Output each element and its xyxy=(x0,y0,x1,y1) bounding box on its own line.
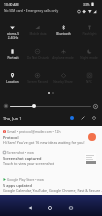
staticText: 5 apps updated xyxy=(3,183,32,188)
button[interactable]: Airplane mode xyxy=(50,44,76,68)
staticText: Mobile data xyxy=(29,32,47,36)
staticText: Nearby Share xyxy=(53,80,73,84)
button[interactable]: Bluetooth xyxy=(50,20,76,44)
button[interactable]: Screenshot • now xyxy=(0,147,102,168)
button[interactable]: Recent apps xyxy=(63,202,79,214)
button[interactable]: Google Play Store • now xyxy=(0,174,102,195)
staticText: Google Calendar, YouTube, Google Chrome,… xyxy=(3,188,102,193)
staticText: Screenshot captured xyxy=(3,156,42,161)
staticText: Protocol xyxy=(3,135,19,140)
button[interactable]: Night mode xyxy=(76,44,102,68)
button[interactable]: Nearby Share xyxy=(50,68,76,92)
button[interactable]: Gmail • protocol@mailer.com • 12h xyxy=(0,126,102,147)
staticText: Screen Record xyxy=(27,80,48,84)
staticText: Location xyxy=(6,80,19,84)
staticText: Screenshot • now xyxy=(7,150,34,154)
staticText: Thu, Jun 1 xyxy=(3,116,22,121)
staticText: NFC xyxy=(86,80,92,84)
button[interactable]: Portrait xyxy=(0,44,25,68)
button[interactable]: Location xyxy=(0,68,25,92)
button[interactable]: Back xyxy=(22,202,38,214)
other: Brightness xyxy=(4,104,8,108)
button[interactable]: Settings xyxy=(93,104,98,109)
button[interactable]: Home xyxy=(42,202,58,214)
staticText: Flashlight xyxy=(82,32,97,36)
staticText: Do Not Disturb xyxy=(27,56,49,60)
button[interactable]: atoms-5 2.4GHz xyxy=(0,20,25,44)
staticText: Bluetooth xyxy=(56,32,71,36)
staticText: Touch to view your screenshot xyxy=(3,161,87,166)
button[interactable]: Mobile data xyxy=(25,20,50,44)
staticText: No SIM card • Emergency calls only xyxy=(4,8,59,12)
button[interactable]: Account xyxy=(70,116,74,120)
button[interactable]: Screen Record xyxy=(25,68,50,92)
staticText: 10:30 AM xyxy=(4,2,19,6)
staticText: atoms-5 2.4GHz xyxy=(7,32,19,39)
button[interactable]: Edit tiles xyxy=(81,116,85,120)
staticText: Hi Sam! You've got 16 new ideas waiting … xyxy=(3,140,87,145)
staticText: Airplane mode xyxy=(52,56,74,60)
button[interactable]: Power xyxy=(92,116,96,120)
staticText: Google Play Store • now xyxy=(7,177,44,181)
button[interactable]: NFC xyxy=(76,68,102,92)
staticText: 33% xyxy=(83,2,90,6)
staticText: Gmail • protocol@mailer.com • 12h xyxy=(7,129,61,133)
button[interactable]: Do Not Disturb xyxy=(25,44,50,68)
staticText: Night mode xyxy=(80,56,98,60)
staticText: Portrait xyxy=(7,56,19,60)
button[interactable]: Flashlight xyxy=(76,20,102,44)
